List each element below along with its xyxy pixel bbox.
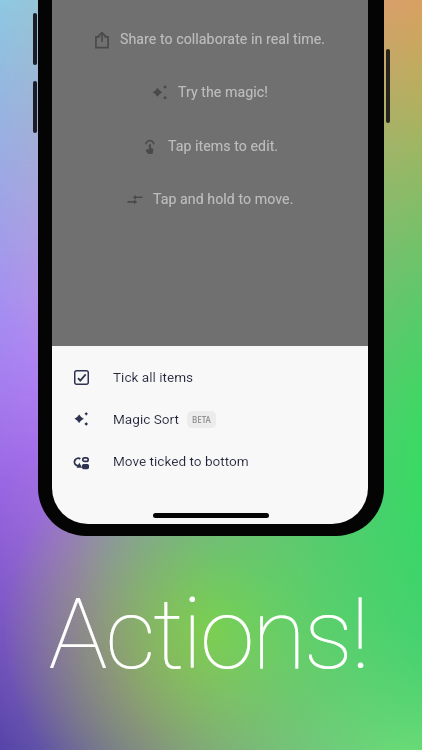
staticText: Tap items to edit.	[168, 138, 279, 155]
staticText: Share to collaborate in real time.	[120, 31, 326, 48]
staticText: BETA	[192, 414, 211, 425]
button[interactable]: Magic Sort	[52, 398, 368, 440]
button[interactable]: Move ticked to bottom	[52, 440, 368, 482]
staticText: Tap and hold to move.	[153, 191, 294, 208]
staticText: Actions!	[0, 576, 419, 692]
staticText: Magic Sort	[113, 411, 179, 427]
staticText: Move ticked to bottom	[113, 453, 249, 469]
button[interactable]: Tick all items	[52, 356, 368, 398]
staticText: Tick all items	[113, 369, 194, 385]
staticText: Try the magic!	[178, 84, 268, 101]
